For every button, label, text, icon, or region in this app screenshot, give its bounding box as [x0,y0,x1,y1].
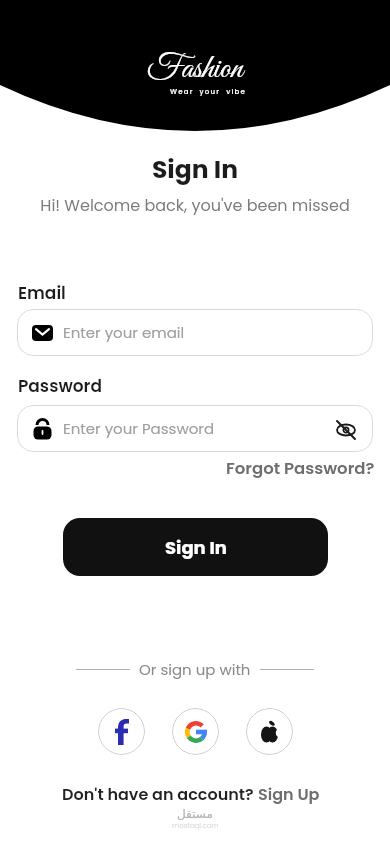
staticText: Enter your email [63,322,185,343]
staticText: Hi! Welcome back, you've been missed [0,194,390,216]
button[interactable]: Sign In [63,518,328,576]
button[interactable] [246,708,293,755]
staticText: Fashion [147,48,243,91]
staticText: Enter your Password [63,418,215,439]
staticText: Email [18,281,66,305]
staticText: Sign In [0,152,390,187]
staticText: Don't have an account? [62,783,258,805]
button[interactable] [172,708,219,755]
button[interactable]: Sign Up [258,783,320,805]
staticText: مستقل [177,807,213,821]
button[interactable]: Enter your Password [17,405,373,452]
staticText: mostaql.com [172,821,219,831]
staticText: Sign In [165,535,227,560]
button[interactable]: Enter your email [17,309,373,356]
staticText: Password [18,374,102,398]
staticText: Or sign up with [139,659,251,680]
staticText: Wear your vibe [170,87,246,97]
button[interactable] [98,708,145,755]
button[interactable]: Forgot Password? [226,457,375,480]
